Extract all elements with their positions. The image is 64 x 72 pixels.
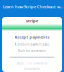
button[interactable]: Learn how Stripe Checkout works <box>0 0 64 17</box>
staticText: Built for conversion <box>18 49 46 53</box>
staticText: Learn how Stripe Checkout works <box>3 4 64 9</box>
staticText: Accept payments <box>14 34 49 40</box>
staticText: A prebuilt payment page <box>14 43 49 46</box>
staticText: Unsubscribe <box>23 67 40 71</box>
staticText: stripe <box>26 18 38 23</box>
staticText: Stripe, 510 Townsend <box>16 62 47 65</box>
